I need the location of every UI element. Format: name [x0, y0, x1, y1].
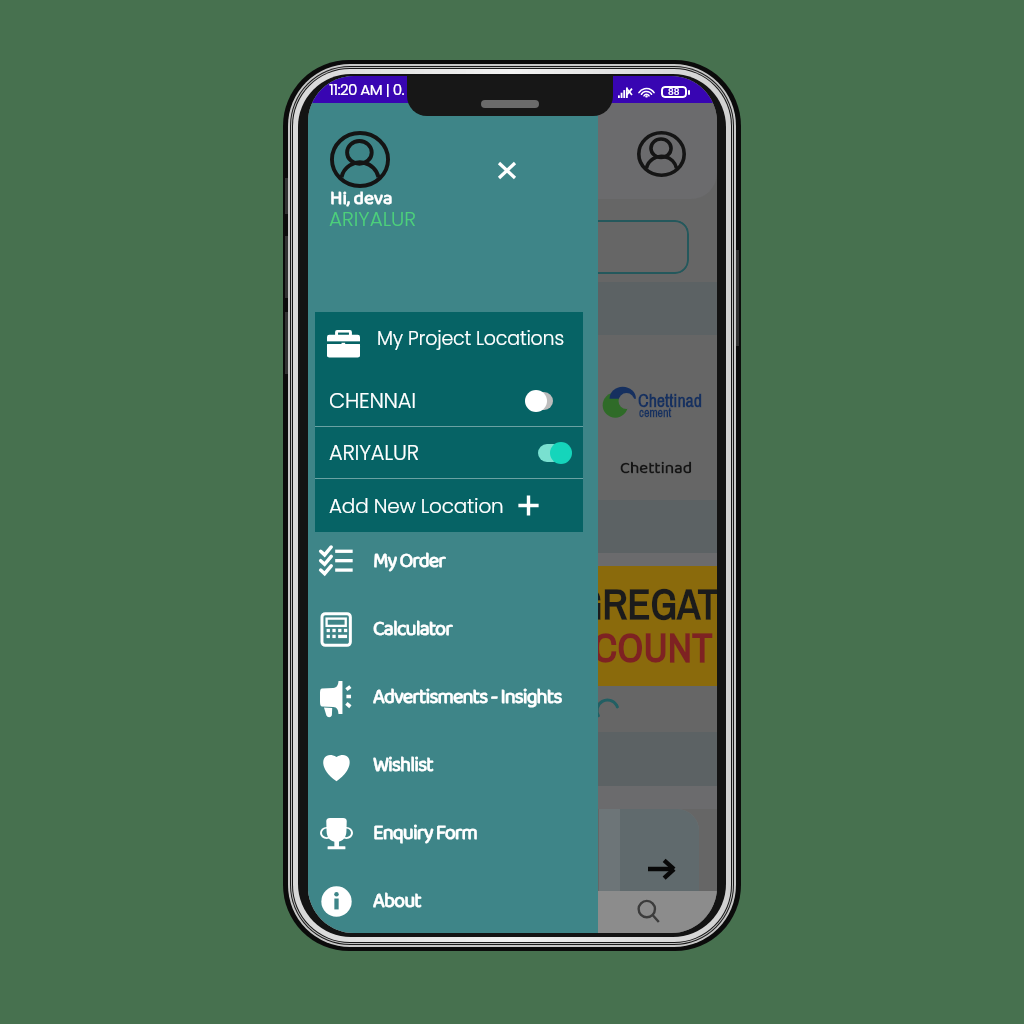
- staticText: ARIYALUR: [329, 438, 419, 467]
- staticText: Add New Location: [329, 492, 504, 520]
- button[interactable]: Add New Location: [315, 479, 583, 532]
- staticText: Advertisments - Insights: [373, 681, 562, 713]
- staticText: Chettinad: [620, 455, 692, 482]
- button[interactable]: About: [308, 867, 598, 933]
- staticText: CHENNAI: [329, 386, 416, 415]
- staticText: DISCOUNT: [537, 620, 713, 675]
- staticText: Wishlist: [373, 749, 433, 781]
- staticText: Chettinad: [638, 388, 703, 412]
- staticText: cement: [639, 405, 672, 421]
- staticText: My Order: [373, 545, 446, 577]
- button[interactable]: Close drawer: [484, 148, 530, 194]
- staticText: 11:20 AM | 0.: [329, 79, 405, 100]
- staticText: AGGREGATE: [526, 576, 717, 633]
- button[interactable]: Calculator: [308, 595, 598, 663]
- staticText: ARIYALUR: [329, 205, 417, 233]
- staticText: 88: [668, 86, 680, 98]
- staticText: My Project Locations: [377, 325, 564, 352]
- staticText: About: [373, 885, 421, 917]
- button[interactable]: CHENNAI: [315, 374, 583, 426]
- staticText: Enquiry Form: [373, 817, 477, 849]
- staticText: Hi, deva: [330, 184, 393, 214]
- button[interactable]: My Order: [308, 527, 598, 595]
- button[interactable]: Wishlist: [308, 731, 598, 799]
- button[interactable]: My Project Locations: [315, 312, 583, 426]
- button[interactable]: ARIYALUR: [315, 427, 583, 478]
- button[interactable]: Enquiry Form: [308, 799, 598, 867]
- staticText: Calculator: [373, 613, 452, 645]
- button[interactable]: Advertisments - Insights: [308, 663, 598, 731]
